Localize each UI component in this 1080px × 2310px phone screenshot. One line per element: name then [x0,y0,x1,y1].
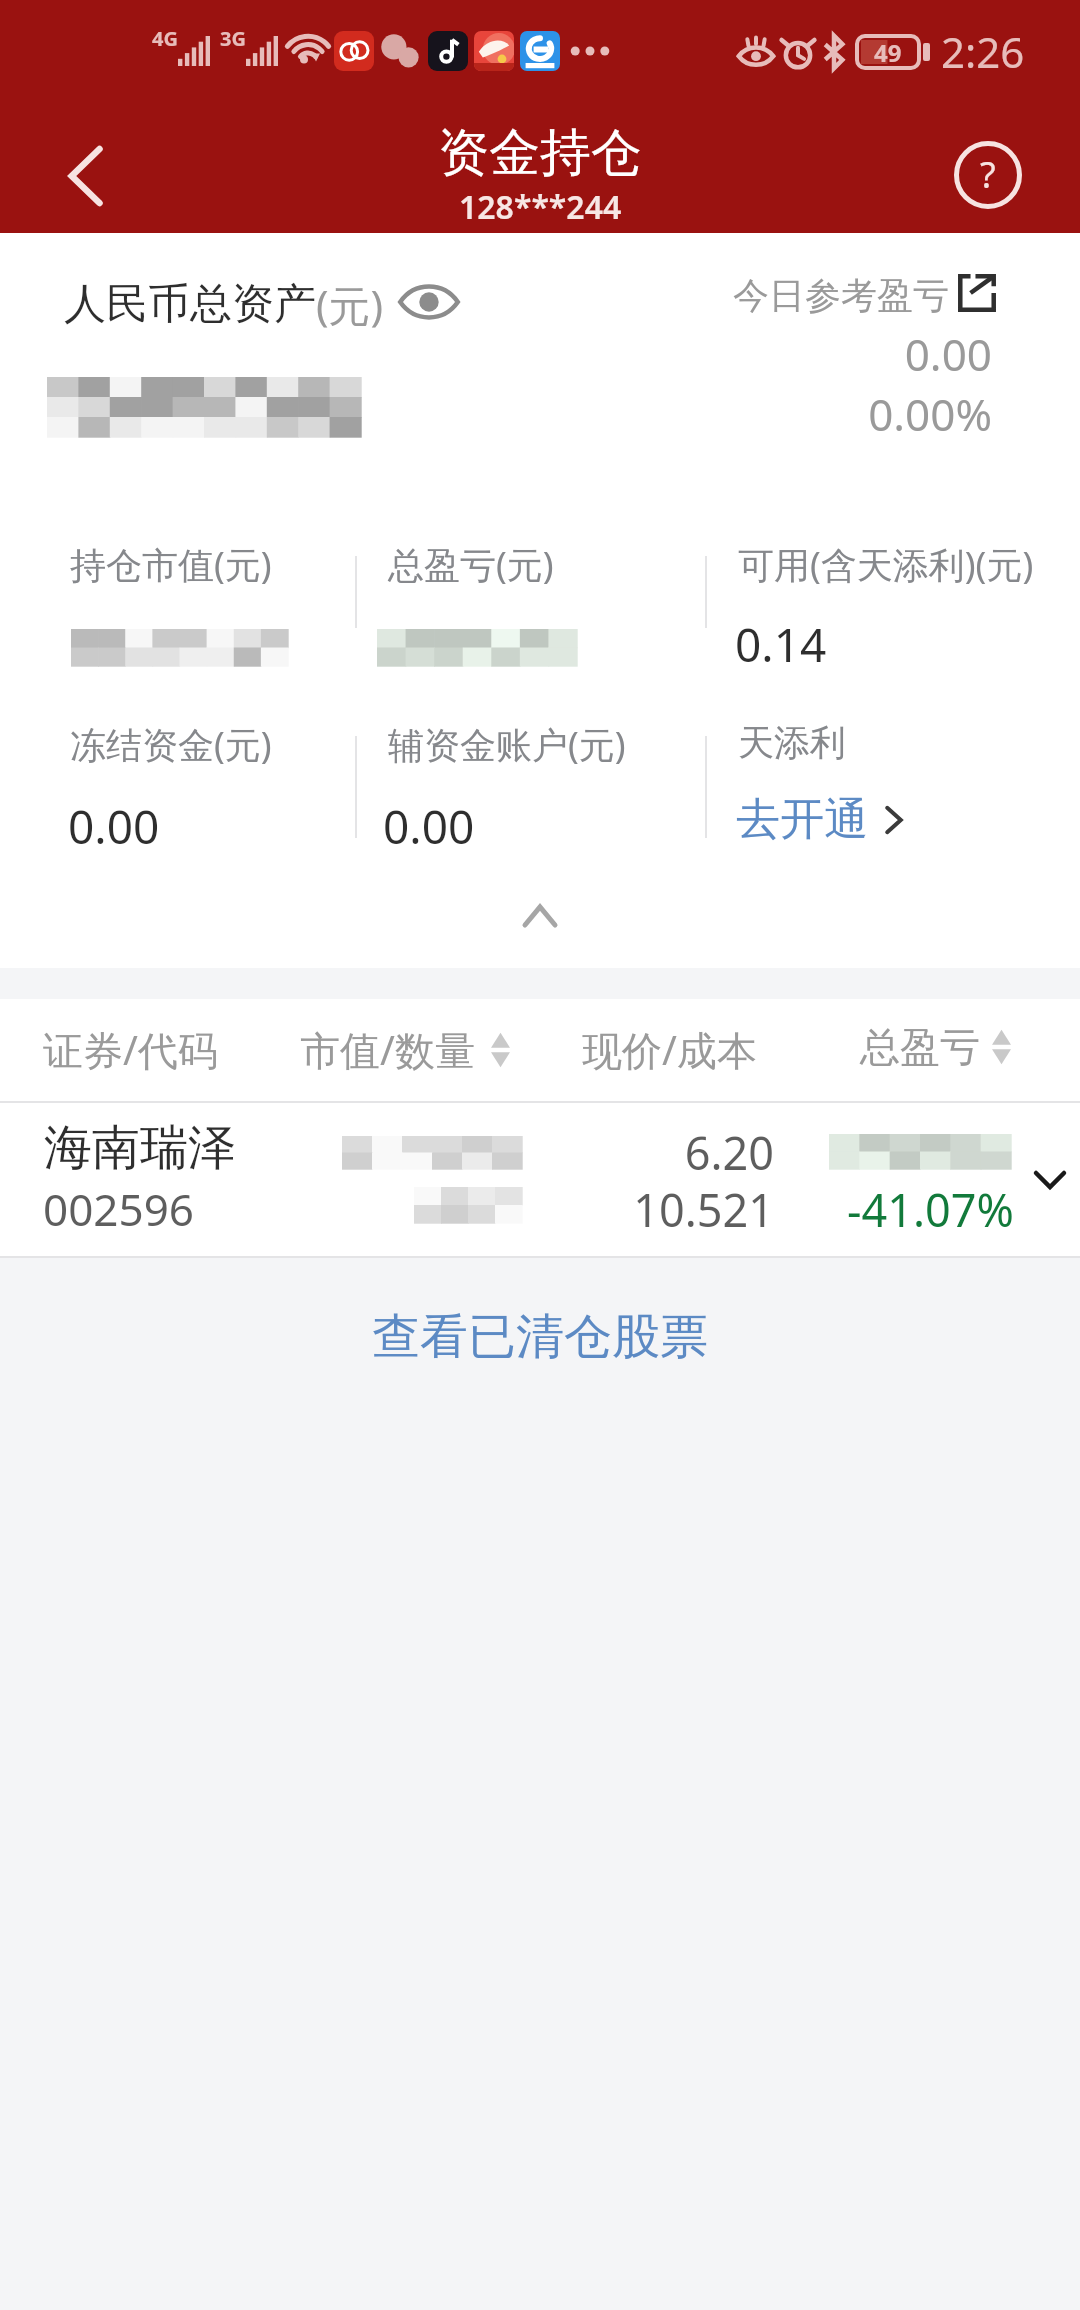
staticText: 去开通 [736,792,868,847]
staticText: (元) [316,276,384,333]
staticText: 现价/成本 [582,1022,757,1077]
staticText: 冻结资金(元) [70,720,272,769]
staticText: 海南瑞泽 [44,1118,236,1178]
staticText: 今日参考盈亏 [733,273,949,318]
button[interactable]: Help [954,141,1022,209]
staticText: -41.07% [802,1179,1014,1240]
staticText: 0.00 [652,324,992,384]
staticText: 0.00% [652,384,992,444]
staticText: 6.20 [570,1122,774,1183]
button[interactable] [0,1103,1080,1258]
button[interactable]: 去开通 [728,792,904,847]
staticText: 总盈亏(元) [388,540,554,589]
button[interactable]: Open today profit details [955,271,999,315]
staticText: 辅资金账户(元) [388,720,626,769]
staticText: 3G [220,25,246,52]
staticText: 0.00 [68,795,160,858]
staticText: 10.521 [570,1179,774,1240]
button[interactable]: Expand row [1015,1145,1080,1215]
staticText: 0.14 [735,613,827,676]
staticText: 天添利 [738,720,846,765]
staticText: 总盈亏 [860,1022,980,1072]
staticText: ? [980,150,996,199]
button[interactable]: 市值/数量 [300,1022,510,1077]
staticText: 市值/数量 [300,1022,475,1077]
staticText: 可用(含天添利)(元) [738,540,1034,589]
button[interactable]: Toggle balance visibility [396,274,462,330]
staticText: 人民币总资产 [64,278,316,331]
staticText: 持仓市值(元) [70,540,272,589]
staticText: 002596 [43,1179,195,1239]
staticText: 4G [152,25,178,52]
button[interactable]: Back [40,125,136,225]
staticText: 证券/代码 [43,1022,218,1077]
button[interactable]: 查看已清仓股票 [0,1262,1080,1412]
button[interactable]: Collapse summary [470,886,610,946]
staticText: 查看已清仓股票 [372,1307,708,1367]
button[interactable]: 总盈亏 [860,1022,1011,1072]
staticText: 2:26 [941,23,1025,80]
staticText: 128***244 [459,185,622,229]
staticText: 0.00 [383,795,475,858]
staticText: 资金持仓 [438,121,642,185]
staticText: 49 [874,36,902,68]
